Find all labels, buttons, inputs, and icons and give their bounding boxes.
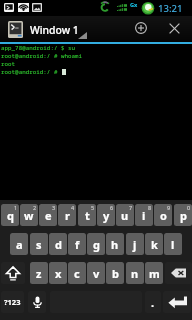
- button[interactable]: New window: [123, 16, 158, 42]
- staticText: w: [24, 208, 34, 223]
- staticText: f: [75, 237, 80, 252]
- staticText: c: [74, 266, 80, 281]
- button[interactable]: l: [164, 233, 182, 255]
- button[interactable]: k: [145, 233, 163, 255]
- button[interactable]: a: [10, 233, 28, 255]
- staticText: app_78@android:/ $ su: [1, 44, 76, 52]
- staticText: y: [103, 208, 110, 223]
- staticText: Gx: [130, 1, 138, 9]
- button[interactable]: b: [106, 262, 124, 284]
- button[interactable]: u: [116, 204, 134, 226]
- button[interactable]: s: [30, 233, 48, 255]
- staticText: x: [55, 266, 62, 281]
- button[interactable]: Backspace: [165, 262, 192, 284]
- staticText: Window 1: [30, 23, 79, 37]
- button[interactable]: g: [87, 233, 105, 255]
- button[interactable]: x: [49, 262, 67, 284]
- button[interactable]: q: [1, 204, 19, 226]
- button[interactable]: h: [106, 233, 124, 255]
- button[interactable]: Enter: [163, 291, 191, 313]
- button[interactable]: p: [174, 204, 192, 226]
- staticText: k: [151, 237, 158, 252]
- button[interactable]: c: [68, 262, 86, 284]
- staticText: 0: [187, 204, 191, 211]
- button[interactable]: j: [126, 233, 144, 255]
- staticText: j: [133, 237, 137, 252]
- staticText: 13:21: [158, 2, 183, 15]
- button[interactable]: n: [126, 262, 144, 284]
- staticText: m: [149, 266, 160, 281]
- staticText: ?123: [4, 297, 21, 307]
- staticText: 2: [33, 204, 37, 211]
- button[interactable]: .: [145, 291, 161, 313]
- staticText: r: [65, 208, 70, 223]
- staticText: 4: [71, 204, 75, 211]
- staticText: 6: [110, 204, 114, 211]
- staticText: root: [1, 60, 16, 68]
- staticText: root@android:/ # whoami: [1, 52, 83, 60]
- button[interactable]: i: [135, 204, 153, 226]
- button[interactable]: e: [39, 204, 57, 226]
- staticText: .: [151, 295, 155, 310]
- staticText: i: [142, 208, 146, 223]
- staticText: h: [111, 237, 119, 252]
- button[interactable]: Close window: [157, 16, 192, 42]
- staticText: e: [45, 208, 52, 223]
- staticText: d: [55, 237, 62, 252]
- staticText: l: [171, 237, 175, 252]
- staticText: q: [7, 208, 14, 223]
- staticText: p: [180, 208, 187, 223]
- staticText: s: [36, 237, 42, 252]
- staticText: n: [131, 266, 139, 281]
- staticText: 5: [91, 204, 95, 211]
- button[interactable]: v: [87, 262, 105, 284]
- button[interactable]: m: [145, 262, 163, 284]
- staticText: 1: [14, 204, 18, 211]
- staticText: o: [160, 208, 167, 223]
- staticText: v: [93, 266, 100, 281]
- button[interactable]: Voice input: [28, 291, 46, 313]
- staticText: z: [36, 266, 42, 281]
- staticText: t: [85, 208, 90, 223]
- staticText: 3: [52, 204, 56, 211]
- button[interactable]: Shift: [1, 262, 25, 284]
- button[interactable]: ?123: [1, 291, 24, 313]
- button[interactable]: y: [97, 204, 115, 226]
- staticText: g: [93, 237, 100, 252]
- staticText: u: [121, 208, 129, 223]
- staticText: 9: [167, 204, 171, 211]
- staticText: 7: [129, 204, 133, 211]
- button[interactable]: r: [58, 204, 76, 226]
- button[interactable]: w: [20, 204, 38, 226]
- button[interactable]: d: [49, 233, 67, 255]
- button[interactable]: t: [78, 204, 96, 226]
- staticText: b: [112, 266, 119, 281]
- staticText: 8: [148, 204, 152, 211]
- staticText: root@android:/ #: [1, 68, 61, 76]
- button[interactable]: z: [30, 262, 48, 284]
- button[interactable]: o: [154, 204, 172, 226]
- button[interactable]: f: [68, 233, 86, 255]
- staticText: a: [16, 237, 23, 252]
